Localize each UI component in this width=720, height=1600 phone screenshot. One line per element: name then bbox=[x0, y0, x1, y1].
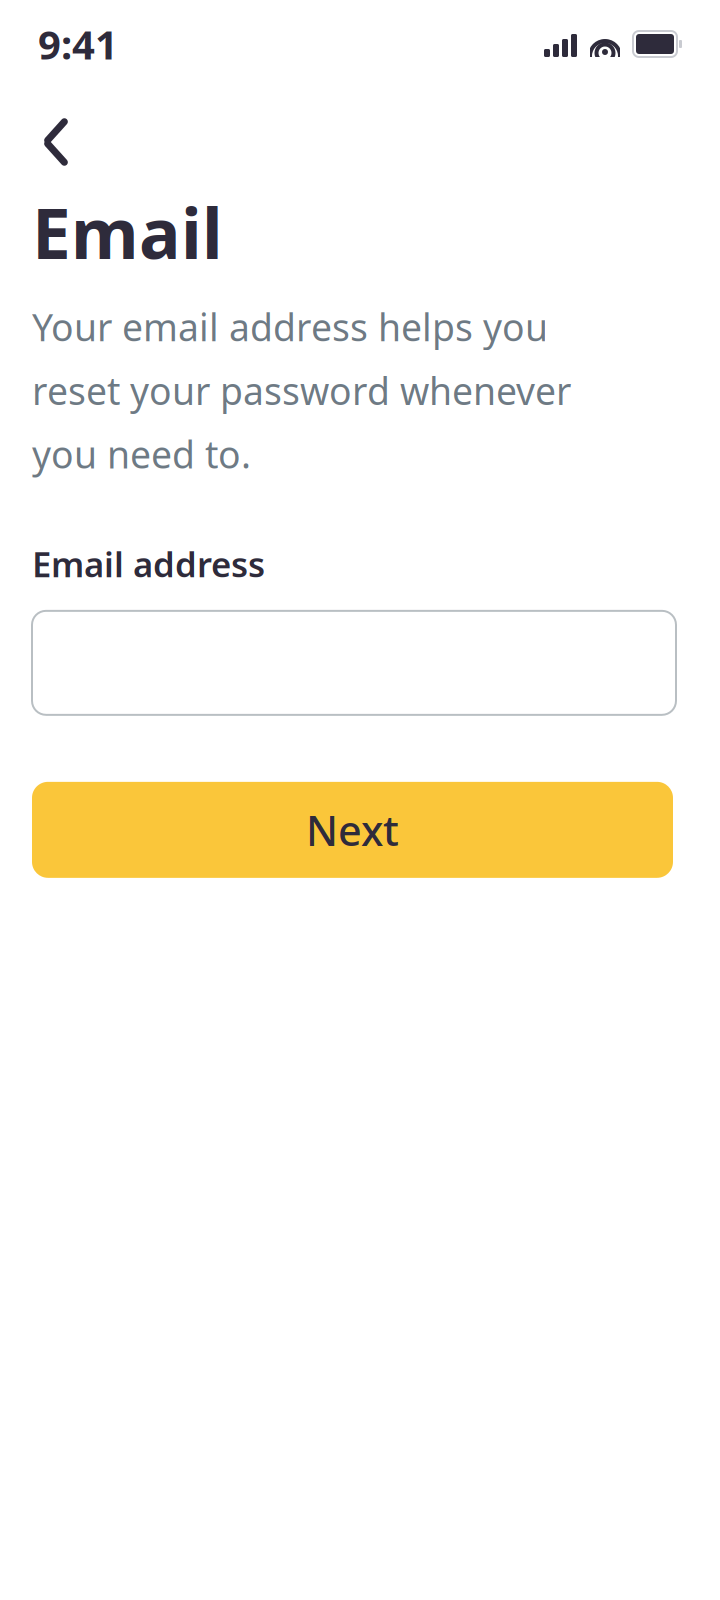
staticText: Email bbox=[32, 186, 223, 278]
staticText: Next bbox=[306, 802, 399, 857]
staticText: 9:41 bbox=[38, 17, 118, 70]
staticText: Email address bbox=[32, 541, 265, 587]
button[interactable]: Next bbox=[32, 782, 673, 878]
button[interactable]: Back bbox=[18, 104, 94, 180]
staticText: Your email address helps you reset your … bbox=[32, 302, 571, 479]
button[interactable]: Email address text field bbox=[32, 611, 676, 715]
